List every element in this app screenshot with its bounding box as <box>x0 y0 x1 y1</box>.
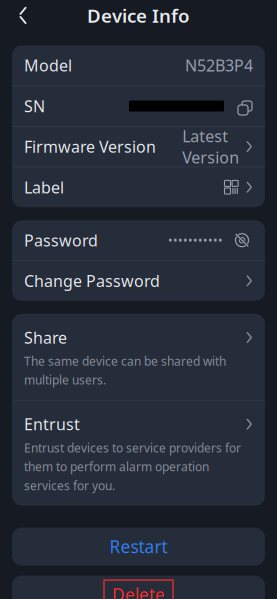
staticText: The same device can be shared with multi… <box>24 353 226 388</box>
staticText: Delete <box>112 583 165 599</box>
button[interactable]: Copy serial number <box>233 94 253 118</box>
button[interactable]: Show password <box>231 228 253 252</box>
staticText: Label <box>24 177 64 198</box>
button[interactable]: Change Password <box>12 261 265 301</box>
button[interactable]: Label <box>12 167 265 207</box>
staticText: Latest Version <box>182 125 239 168</box>
button[interactable]: Share <box>12 314 265 400</box>
staticText: N52B3P4 <box>185 55 253 76</box>
staticText: Share <box>24 327 67 348</box>
staticText: Model <box>24 55 72 76</box>
button[interactable]: Firmware Version <box>12 127 265 167</box>
staticText: SN <box>24 95 45 117</box>
button[interactable]: Back <box>6 0 40 32</box>
staticText: Entrust <box>24 413 80 435</box>
staticText: Change Password <box>24 270 160 291</box>
staticText: ••••••••••• <box>168 232 223 248</box>
button[interactable]: Restart <box>12 528 265 566</box>
staticText: Password <box>24 230 98 251</box>
button[interactable]: Entrust <box>12 400 265 506</box>
staticText: Firmware Version <box>24 136 156 157</box>
button[interactable]: Delete <box>12 576 265 599</box>
staticText: Device Info <box>87 3 190 28</box>
staticText: Restart <box>109 535 167 558</box>
staticText: Entrust devices to service providers for… <box>24 440 241 494</box>
